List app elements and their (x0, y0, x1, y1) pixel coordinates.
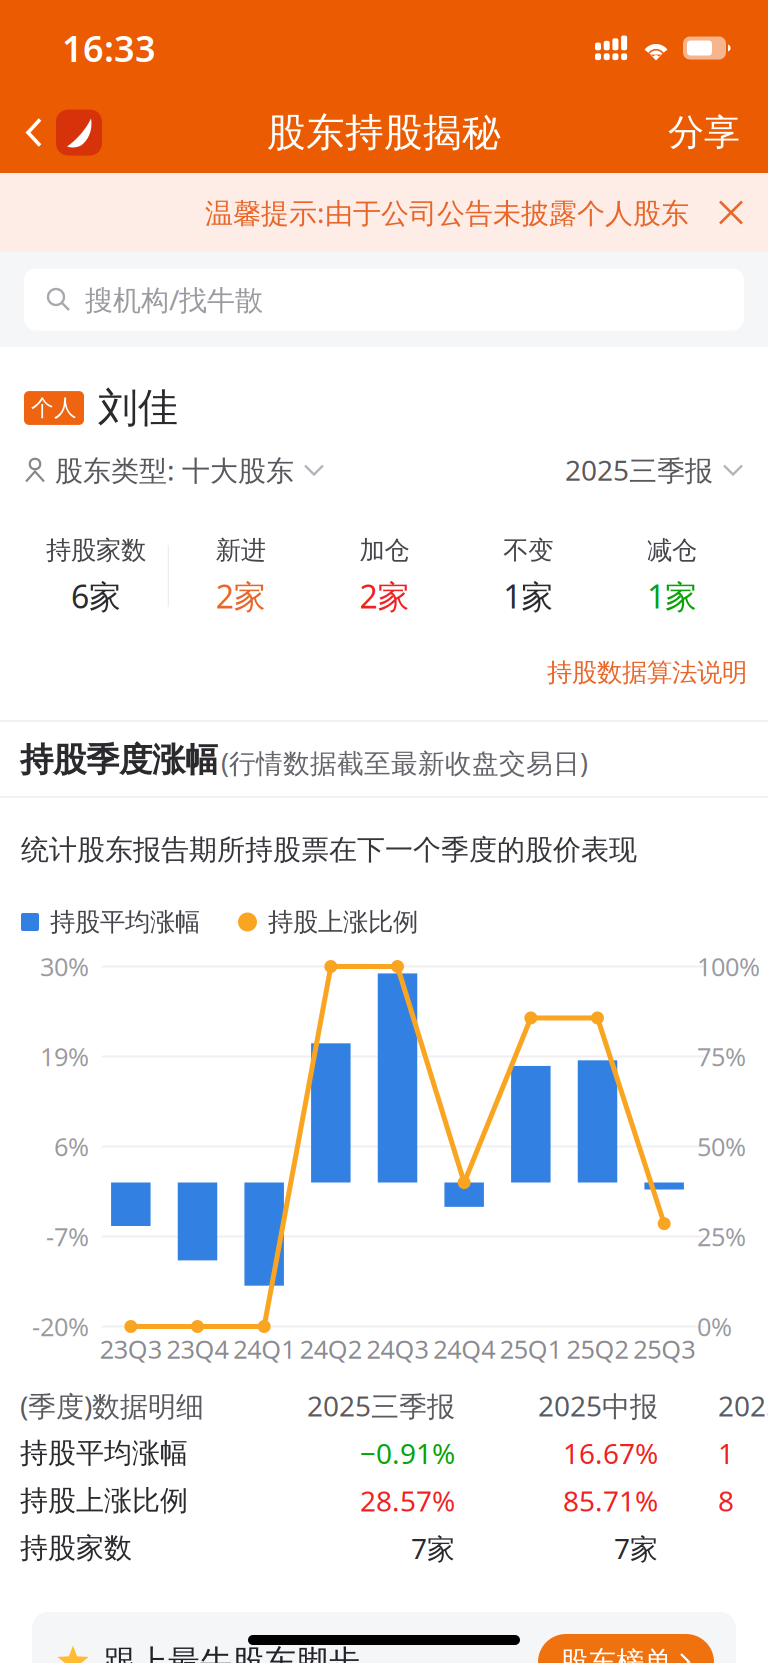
staticText: 85.71% (563, 1482, 658, 1519)
staticText: 30% (40, 950, 89, 983)
staticText: 跟上最牛股东脚步 (104, 1642, 360, 1663)
staticText: 19% (40, 1040, 89, 1073)
staticText: −0.91% (360, 1435, 455, 1472)
staticText: 2025三季报 (565, 451, 713, 489)
staticText: 股东持股揭秘 (267, 109, 501, 156)
staticText: 温馨提示:由于公司公告未披露个人股东 (205, 194, 689, 231)
staticText: 100% (697, 950, 760, 983)
staticText: 2025三季报 (307, 1387, 455, 1424)
button[interactable]: Close (689, 198, 768, 226)
staticText: 减仓 (647, 535, 697, 566)
staticText: (行情数据截至最新收盘交易日) (221, 745, 588, 780)
staticText: 24Q3 (366, 1332, 428, 1366)
staticText: 24Q2 (300, 1332, 362, 1366)
button[interactable]: 分享 (648, 92, 768, 173)
staticText: 股东类型: 十大股东 (55, 451, 294, 489)
staticText: 2家 (216, 575, 266, 617)
staticText: 28.57% (360, 1482, 455, 1519)
staticText: 不变 (503, 535, 553, 566)
staticText: 股东榜单 (560, 1645, 672, 1663)
staticText: 25Q2 (566, 1332, 628, 1366)
staticText: 2025 (718, 1387, 768, 1424)
staticText: 2025中报 (538, 1387, 658, 1424)
staticText: 6% (54, 1130, 89, 1163)
button[interactable]: 搜机构/找牛散 (0, 268, 768, 330)
staticText: 持股数据算法说明 (547, 657, 747, 688)
staticText: 持股平均涨幅 (50, 906, 200, 937)
staticText: 75% (697, 1040, 746, 1073)
staticText: 8 (718, 1482, 734, 1519)
staticText: -7% (46, 1220, 89, 1253)
staticText: 50% (697, 1130, 746, 1163)
staticText: 分享 (668, 110, 740, 155)
staticText: 持股家数 (46, 535, 146, 566)
button[interactable]: 2025三季报 (565, 450, 744, 490)
staticText: 7家 (614, 1530, 658, 1567)
staticText: 新进 (216, 535, 266, 566)
staticText: 持股上涨比例 (268, 906, 418, 937)
button[interactable]: 股东类型: 十大股东 (24, 450, 325, 490)
staticText: 23Q4 (166, 1332, 228, 1366)
staticText: 6家 (71, 575, 121, 617)
staticText: -20% (32, 1310, 89, 1343)
staticText: (季度)数据明细 (20, 1387, 204, 1424)
staticText: 持股季度涨幅 (20, 739, 218, 780)
staticText: 1 (718, 1435, 734, 1472)
staticText: 1家 (647, 575, 697, 617)
button[interactable]: 跟上最牛股东脚步 (32, 1612, 736, 1663)
staticText: 2家 (359, 575, 409, 617)
staticText: 搜机构/找牛散 (85, 281, 263, 318)
staticText: 25Q3 (633, 1332, 695, 1366)
staticText: 持股家数 (20, 1531, 132, 1565)
staticText: 持股上涨比例 (20, 1484, 188, 1518)
staticText: 16.67% (563, 1435, 658, 1472)
staticText: 1家 (503, 575, 553, 617)
staticText: 0% (697, 1310, 732, 1343)
staticText: 24Q1 (233, 1332, 295, 1366)
staticText: 25% (697, 1220, 746, 1253)
staticText: 个人 (31, 394, 77, 422)
staticText: 25Q1 (500, 1332, 562, 1366)
staticText: 统计股东报告期所持股票在下一个季度的股价表现 (21, 833, 637, 867)
button[interactable]: Back (0, 92, 114, 173)
button[interactable]: 持股数据算法说明 (547, 650, 768, 695)
staticText: 7家 (411, 1530, 455, 1567)
staticText: 24Q4 (433, 1332, 495, 1366)
staticText: 23Q3 (100, 1332, 162, 1366)
staticText: 持股平均涨幅 (20, 1436, 188, 1470)
staticText: 加仓 (359, 535, 409, 566)
staticText: 刘佳 (98, 383, 178, 432)
staticText: 16:33 (62, 24, 156, 72)
